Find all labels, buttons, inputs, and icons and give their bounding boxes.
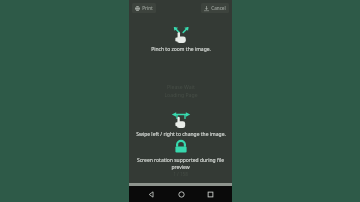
staticText: Swipe left / right to change the image. [136,131,226,138]
staticText: Cancel [211,5,226,11]
other: Swipe left or right [171,112,191,128]
staticText: Print [142,5,153,11]
staticText: Please Wait [167,83,195,90]
staticText: Pinch to zoom the image. [151,46,211,53]
button[interactable]: Print [132,3,156,13]
button[interactable]: Recent apps [202,186,218,202]
other: Screen rotation lock [174,140,188,154]
staticText: 1 / 158 [173,171,188,177]
staticText: Screen rotation supported during file pr… [133,157,228,170]
button[interactable]: Home [173,186,189,202]
other: Pinch to zoom [172,27,190,43]
staticText: Loading Page [164,91,198,98]
button[interactable]: Back [143,186,159,202]
button[interactable]: Cancel [201,3,229,13]
